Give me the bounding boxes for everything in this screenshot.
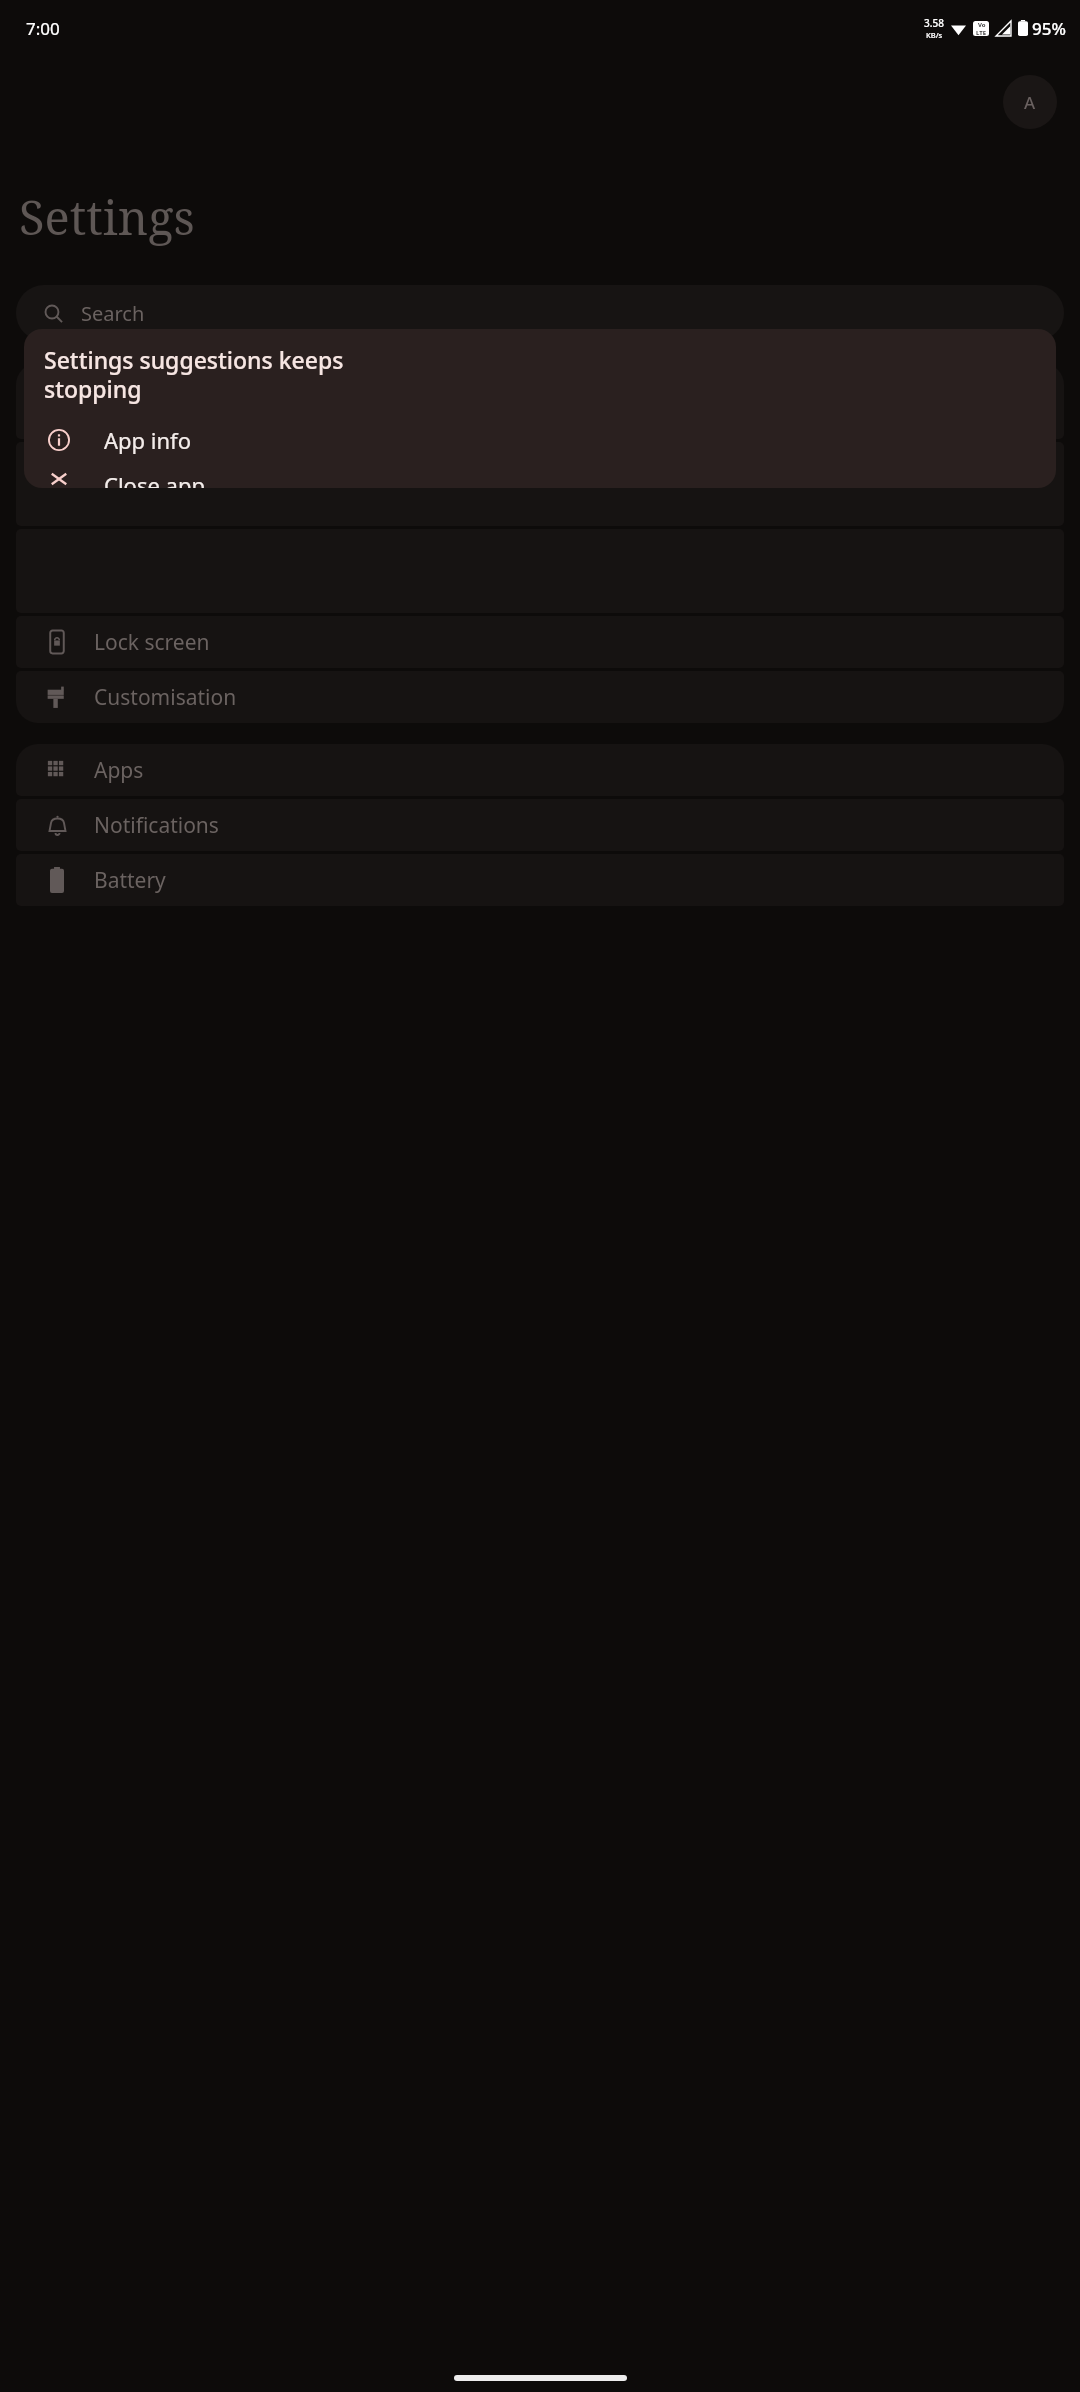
staticText: Search — [81, 300, 145, 327]
button[interactable]: Search — [16, 285, 1064, 341]
button[interactable]: Apps — [16, 744, 1064, 796]
staticText: App info — [104, 425, 191, 455]
button[interactable]: Customisation — [16, 671, 1064, 723]
button[interactable]: Lock screen — [16, 616, 1064, 668]
staticText: 7:00 — [26, 17, 60, 40]
button[interactable]: Network and internet — [16, 363, 1064, 439]
staticText: Settings suggestions keeps stopping — [44, 344, 344, 405]
staticText: Network and internet — [96, 374, 308, 403]
staticText: Settings — [19, 185, 195, 249]
button[interactable]: App info — [24, 421, 1056, 458]
button[interactable] — [16, 442, 1064, 526]
staticText: Customisation — [94, 683, 237, 712]
staticText: Vo — [978, 21, 986, 29]
staticText: Notifications — [94, 811, 219, 840]
staticText: A — [1024, 91, 1036, 114]
button[interactable]: Notifications — [16, 799, 1064, 851]
staticText: 95% — [1032, 17, 1066, 40]
staticText: KB/s — [926, 30, 943, 40]
button[interactable]: Account — [1003, 75, 1057, 129]
staticText: Apps — [94, 756, 144, 785]
button[interactable]: Close app — [24, 470, 1056, 488]
staticText: Close app — [104, 470, 205, 488]
staticText: LTE — [976, 29, 987, 36]
button[interactable]: Battery — [16, 854, 1064, 906]
staticText: Lock screen — [94, 628, 210, 657]
staticText: 3.58 — [924, 16, 944, 30]
staticText: Battery — [94, 866, 166, 895]
